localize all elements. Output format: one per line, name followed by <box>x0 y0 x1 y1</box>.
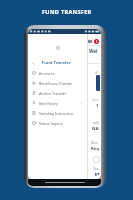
staticText: Nom <box>91 141 99 145</box>
button[interactable]: Standing Instruction <box>28 108 88 118</box>
staticText: Accounts <box>39 71 55 76</box>
button[interactable]: Accounts <box>28 68 88 78</box>
staticText: Curr <box>92 98 99 102</box>
staticText: Fund Transfer <box>42 60 71 66</box>
staticText: Beneficiary Transfer <box>39 81 73 86</box>
button[interactable]: Beneficiary Transfer <box>28 78 88 88</box>
staticText: Beneficiary <box>39 101 58 106</box>
staticText: Req <box>91 146 99 152</box>
staticText: Wel <box>89 48 98 54</box>
button[interactable]: Beneficiary <box>28 98 88 108</box>
staticText: Status Inquiry <box>39 121 63 126</box>
staticText: FUND TRANSFER <box>42 8 92 16</box>
button[interactable]: Status Inquiry <box>28 118 88 128</box>
staticText: Airtime Transfer <box>39 91 67 96</box>
button[interactable]: Airtime Transfer <box>28 88 88 98</box>
other: Bank logo <box>94 39 99 44</box>
button[interactable]: Open navigation menu <box>88 40 92 43</box>
staticText: Standing Instruction <box>39 111 74 116</box>
staticText: acN <box>93 121 99 125</box>
other: Back <box>32 62 35 65</box>
staticText: 1 <box>96 103 99 109</box>
staticText: Our <box>93 167 99 171</box>
staticText: NA <box>92 126 99 132</box>
button[interactable]: Back <box>28 60 88 66</box>
